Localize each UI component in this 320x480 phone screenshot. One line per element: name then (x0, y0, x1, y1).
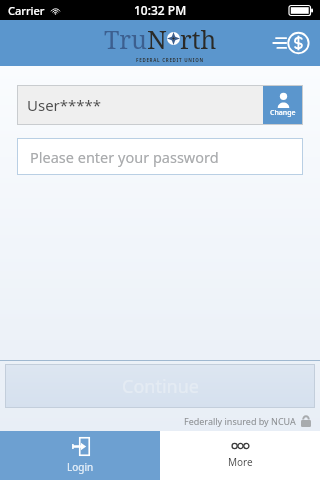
staticText: More (228, 455, 253, 469)
button[interactable]: Change user (263, 85, 303, 125)
staticText: Login (67, 460, 94, 474)
staticText: Please enter your password (30, 147, 219, 167)
staticText: FEDERAL CREDIT UNION (136, 57, 204, 63)
staticText: Continue (122, 374, 199, 399)
staticText: Tru (104, 22, 147, 56)
button[interactable]: More (160, 431, 320, 480)
button[interactable]: Money transfer (276, 26, 310, 60)
staticText: N (147, 21, 167, 56)
staticText: rth (180, 22, 217, 56)
button[interactable]: User***** (17, 85, 303, 125)
staticText: Carrier (8, 3, 45, 18)
staticText: Federally insured by NCUA (184, 415, 296, 427)
staticText: Change (270, 108, 296, 118)
staticText: 10:32 PM (134, 2, 187, 18)
button[interactable]: Login (0, 431, 160, 480)
button[interactable]: Please enter your password (17, 138, 303, 175)
staticText: User***** (27, 95, 102, 115)
button[interactable]: Continue (5, 364, 315, 408)
